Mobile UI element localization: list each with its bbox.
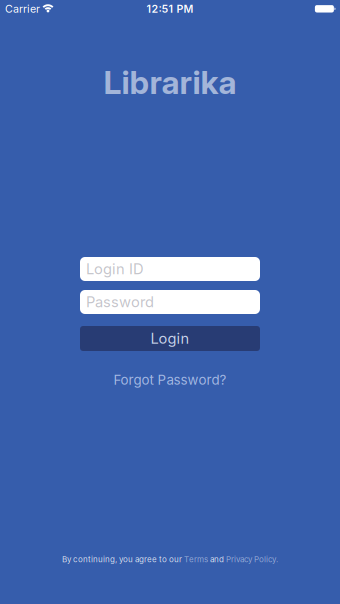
staticText: and [208, 555, 226, 564]
button[interactable]: Privacy Policy. [226, 555, 278, 564]
textField[interactable]: Login ID [86, 260, 260, 278]
staticText: Password [86, 293, 154, 311]
textField[interactable]: Password [86, 293, 260, 311]
staticText: 12:51 PM [146, 2, 193, 15]
staticText: Carrier [5, 2, 40, 15]
staticText: Login ID [86, 260, 144, 278]
staticText: Login ID [86, 260, 144, 278]
staticText: Terms [184, 555, 208, 564]
button[interactable]: Terms [184, 555, 208, 564]
staticText: Password [86, 293, 154, 311]
staticText: By continuing, you agree to our [62, 555, 184, 564]
button[interactable]: Login [80, 326, 260, 351]
staticText: Forgot Password? [113, 372, 226, 388]
staticText: Privacy Policy. [226, 555, 278, 564]
staticText: Login [150, 330, 189, 347]
staticText: Librarika [103, 63, 236, 101]
button[interactable]: Forgot Password? [113, 372, 226, 388]
